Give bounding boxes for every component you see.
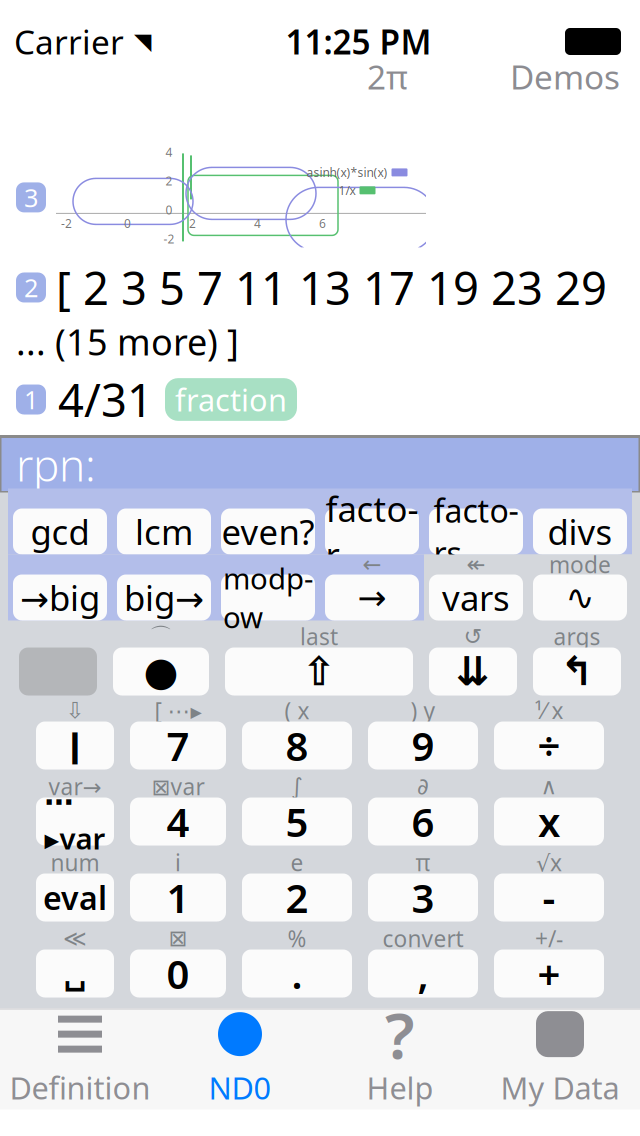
staticText: → (357, 578, 386, 617)
button[interactable]: x (486, 775, 612, 845)
button[interactable]: RPN input (0, 436, 640, 492)
staticText: eval (43, 876, 107, 919)
button[interactable]: Definition (0, 1009, 160, 1109)
staticText: 3 (411, 871, 434, 924)
staticText: 2π (367, 54, 408, 99)
staticText: + (537, 947, 560, 1000)
staticText: 2 (285, 871, 308, 924)
button[interactable]: 5 (234, 775, 360, 845)
staticText: ⌒ (149, 623, 172, 650)
staticText: 1/x (338, 182, 355, 198)
button[interactable]: ⇊ (421, 625, 525, 695)
button[interactable]: modpow (216, 554, 320, 620)
button[interactable]: My Data (480, 1009, 640, 1109)
button[interactable]: Help (320, 1009, 480, 1109)
staticText: 7 (166, 719, 189, 772)
button[interactable]: 9 (360, 699, 486, 769)
staticText: Definition (9, 1067, 150, 1108)
staticText: 0 (165, 202, 172, 218)
staticText: 1 (24, 383, 38, 416)
button[interactable]: →big (8, 554, 112, 620)
staticText: modpow (223, 558, 313, 636)
staticText: 4 (165, 144, 172, 160)
staticText: ( x (284, 695, 309, 725)
staticText: 4/31 (58, 369, 153, 430)
staticText: Help (366, 1067, 433, 1108)
staticText: rpn: (16, 435, 96, 494)
staticText: - (542, 871, 555, 924)
staticText: My Data (500, 1067, 619, 1108)
button[interactable]: lcm (112, 488, 216, 554)
button[interactable]: vars (424, 554, 528, 620)
staticText: 5 (285, 795, 308, 848)
staticText: ↺ (463, 624, 482, 649)
staticText: ● (143, 649, 178, 694)
button[interactable]: 6 (360, 775, 486, 845)
staticText: mode (549, 549, 611, 579)
button[interactable]: gcd (8, 488, 112, 554)
button[interactable] (11, 625, 105, 695)
button[interactable]: → (320, 554, 424, 620)
button[interactable]: ↰ (525, 625, 629, 695)
staticText: divs (547, 508, 612, 554)
button[interactable]: 2 (234, 851, 360, 921)
button[interactable]: ⋯▸var (28, 775, 122, 845)
button[interactable]: 0 (122, 927, 234, 997)
staticText: →big (20, 574, 100, 620)
staticText: Carrier (14, 19, 124, 64)
button[interactable]: , (360, 927, 486, 997)
button[interactable]: + (486, 927, 612, 997)
button[interactable]: - (486, 851, 612, 921)
staticText: factor (325, 485, 418, 578)
staticText: 11:25 PM (285, 19, 431, 64)
staticText: ⇊ (456, 649, 490, 694)
staticText: last (300, 621, 338, 651)
staticText: 6 (319, 215, 326, 231)
button[interactable]: ● (105, 625, 217, 695)
staticText: 0 (124, 215, 131, 231)
button[interactable]: 3 (360, 851, 486, 921)
button[interactable]: 2π (353, 50, 422, 103)
staticText: ND0 (208, 1067, 271, 1108)
button[interactable]: ND0 (160, 1009, 320, 1109)
staticText: ⊠var (151, 771, 204, 801)
button[interactable]: 1 (122, 851, 234, 921)
button[interactable]: 7 (122, 699, 234, 769)
staticText: % (287, 923, 306, 953)
staticText: √x (536, 847, 562, 877)
button[interactable]: . (234, 927, 360, 997)
button[interactable]: eval (28, 851, 122, 921)
staticText: i (175, 847, 181, 877)
button[interactable]: ∿ (528, 554, 632, 620)
button[interactable]: even? (216, 488, 320, 554)
staticText: [ 2 3 5 7 11 13 17 19 23 29 (56, 257, 607, 318)
button[interactable]: divs (528, 488, 632, 554)
staticText: var→ (48, 771, 101, 801)
staticText: fraction (175, 379, 287, 420)
button[interactable]: factor (320, 488, 424, 554)
staticText: vars (442, 574, 510, 620)
staticText: ... (15 more) ] (16, 318, 239, 365)
button[interactable]: ⇧ (217, 625, 421, 695)
staticText: +/- (535, 923, 563, 953)
staticText: 9 (411, 719, 434, 772)
staticText: asinh(x)*sin(x) (306, 164, 387, 180)
button[interactable]: 4 (122, 775, 234, 845)
staticText: 1 (166, 871, 189, 924)
staticText: 4 (166, 795, 189, 848)
button[interactable]: ␣ (28, 927, 122, 997)
staticText: ⇧ (302, 649, 336, 694)
staticText: ← (362, 552, 381, 577)
staticText: 2 (189, 215, 196, 231)
button[interactable]: factors (424, 488, 528, 554)
button[interactable]: ÷ (486, 699, 612, 769)
staticText: -2 (61, 215, 72, 231)
button[interactable]: 8 (234, 699, 360, 769)
staticText: ÷ (537, 719, 560, 772)
staticText: num (50, 847, 99, 877)
button[interactable]: Demos (500, 50, 630, 103)
staticText: lcm (135, 508, 193, 554)
button[interactable]: ❙ (28, 699, 122, 769)
button[interactable]: big→ (112, 554, 216, 620)
staticText: ∧ (540, 774, 557, 799)
